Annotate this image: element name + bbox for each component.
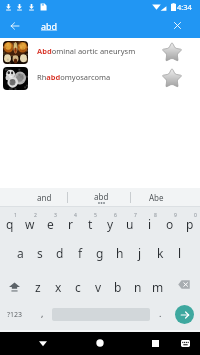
staticText: b [114,279,122,295]
button[interactable]: Add to favorites [159,65,185,91]
button[interactable]: a [10,237,30,267]
staticText: abd [41,20,58,32]
button[interactable]: f [70,237,90,267]
staticText: 0 [194,212,197,219]
staticText: y [107,216,114,232]
staticText: g [96,245,104,261]
staticText: z [35,279,41,295]
button[interactable]: 0 [180,207,200,237]
button[interactable]: . [150,301,170,328]
staticText: and [37,192,52,203]
button[interactable]: j [130,237,150,267]
staticText: 4:34 [177,2,192,12]
button[interactable]: x [48,267,68,301]
button[interactable]: and [0,188,68,207]
staticText: 9 [174,212,177,219]
staticText: abd [94,191,109,202]
staticText: q [6,216,14,232]
button[interactable]: 5 [80,207,100,237]
staticText: . [159,307,162,319]
button[interactable]: 6 [100,207,120,237]
staticText: n [134,279,142,295]
staticText: Abe [149,192,164,203]
staticText: l [178,245,182,261]
staticText: w [25,216,35,232]
button[interactable]: Abe [130,188,200,207]
button[interactable]: s [30,237,50,267]
staticText: u [126,216,134,232]
button[interactable]: Add to favorites [159,39,185,65]
staticText: 2 [34,212,37,219]
button[interactable]: 4 [60,207,80,237]
button[interactable]: Search [175,305,194,324]
button[interactable]: 3 [40,207,60,237]
button[interactable]: abd [68,188,130,207]
button[interactable]: 2 [20,207,40,237]
button[interactable]: m [148,267,168,301]
button[interactable]: Shift [0,267,28,301]
button[interactable]: 8 [140,207,160,237]
staticText: i [148,216,152,232]
button[interactable]: Backspace [168,267,200,301]
staticText: 7 [134,212,137,219]
staticText: s [37,245,43,261]
button[interactable]: , [32,301,52,328]
button[interactable]: k [150,237,170,267]
button[interactable]: 9 [160,207,180,237]
staticText: x [55,279,62,295]
staticText: h [116,245,124,261]
staticText: c [75,279,81,295]
button[interactable]: Navigate up [2,13,27,38]
staticText: m [152,279,164,295]
button[interactable]: Abdominal aortic aneurysm [0,39,200,65]
button[interactable]: h [110,237,130,267]
staticText: r [68,216,73,232]
button[interactable]: z [28,267,48,301]
staticText: p [186,216,194,232]
button[interactable]: Switch keyboard [174,332,196,354]
staticText: a [17,245,24,261]
button[interactable]: v [88,267,108,301]
staticText: f [78,245,83,261]
button[interactable]: c [68,267,88,301]
button[interactable]: l [170,237,190,267]
button[interactable]: Recent apps [144,332,166,354]
button[interactable]: b [108,267,128,301]
button[interactable]: 1 [0,207,20,237]
staticText: Rhabdomyosarcoma [37,72,111,82]
staticText: , [41,307,44,319]
staticText: Abdominal aortic aneurysm [37,46,136,56]
button[interactable]: d [50,237,70,267]
staticText: e [47,216,54,232]
staticText: o [166,216,174,232]
button[interactable]: g [90,237,110,267]
staticText: 4 [74,212,77,219]
staticText: ?123 [7,310,23,320]
staticText: 8 [154,212,157,219]
staticText: d [56,245,64,261]
button[interactable]: Rhabdomyosarcoma [0,65,200,91]
staticText: t [88,216,93,232]
button[interactable]: n [128,267,148,301]
staticText: j [138,245,142,261]
button[interactable]: Clear query [165,13,190,38]
button[interactable]: Back [32,332,54,354]
staticText: 5 [94,212,97,219]
button[interactable]: 7 [120,207,140,237]
button[interactable]: Home [89,332,111,354]
staticText: v [95,279,102,295]
staticText: k [157,245,164,261]
staticText: 3 [54,212,57,219]
button[interactable]: ?123 [0,301,30,328]
staticText: 6 [114,212,117,219]
staticText: 1 [14,212,17,219]
